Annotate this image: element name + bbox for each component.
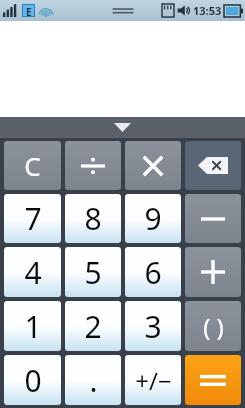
staticText: 2 [84,306,102,347]
button[interactable]: 9 [125,194,181,243]
button[interactable]: ( ) [185,301,241,351]
button[interactable] [185,247,241,297]
staticText: ( ) [203,310,224,343]
staticText: 6 [144,252,162,293]
staticText: 5 [84,252,102,293]
button[interactable]: 8 [65,194,121,243]
button[interactable]: 6 [125,247,181,297]
button[interactable]: 4 [4,247,61,297]
button[interactable]: Collapse keypad [0,117,245,138]
staticText: 0 [24,360,42,401]
staticText: 4 [24,252,42,293]
button[interactable]: 0 [4,355,61,405]
button[interactable]: C [4,141,61,190]
staticText: 3 [144,306,162,347]
button[interactable]: +/− [125,355,181,405]
staticText: 7 [24,198,42,239]
button[interactable]: . [65,355,121,405]
staticText: +/− [135,364,172,397]
button[interactable]: 5 [65,247,121,297]
staticText: 1 [24,306,42,347]
button[interactable] [185,355,241,405]
button[interactable]: 3 [125,301,181,351]
button[interactable]: 1 [4,301,61,351]
staticText: C [24,148,41,183]
staticText: 9 [144,198,162,239]
button[interactable] [185,194,241,243]
staticText: 13:53 [193,3,222,18]
button[interactable]: 7 [4,194,61,243]
staticText: 8 [84,198,102,239]
staticText: E [26,5,32,16]
button[interactable] [65,141,121,190]
button[interactable]: Backspace [185,141,241,190]
button[interactable] [125,141,181,190]
button[interactable]: 2 [65,301,121,351]
staticText: . [89,360,98,401]
